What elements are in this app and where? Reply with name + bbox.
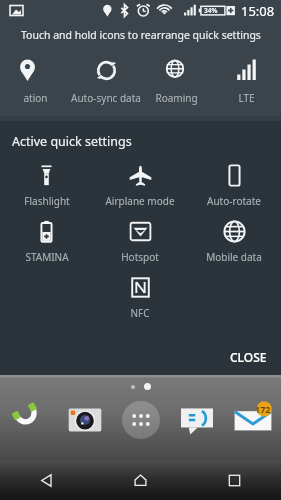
button[interactable]: Flashlight (0, 164, 93, 208)
button[interactable]: CLOSE (216, 341, 281, 373)
button[interactable]: Camera (57, 396, 113, 444)
button[interactable]: Messaging (169, 396, 225, 444)
staticText: Airplane mode (105, 194, 175, 208)
staticText: STAMINA (25, 250, 69, 264)
button[interactable]: Back (0, 460, 93, 500)
staticText: Hotspot (121, 250, 159, 264)
staticText: Roaming (155, 91, 198, 105)
staticText: CLOSE (230, 349, 267, 365)
staticText: Touch and hold icons to rearrange quick … (21, 28, 261, 42)
staticText: NFC (130, 306, 150, 320)
button[interactable]: Apps (113, 396, 169, 444)
staticText: ation (23, 91, 48, 105)
button[interactable]: STAMINA (0, 220, 93, 264)
button[interactable]: Hotspot (93, 220, 187, 264)
button[interactable]: Airplane mode (93, 164, 187, 208)
button[interactable]: Roaming (141, 48, 211, 116)
staticText: Mobile data (206, 250, 262, 264)
button[interactable]: NFC (93, 276, 187, 320)
staticText: 34% (204, 6, 218, 15)
button[interactable]: Auto-sync data (71, 48, 141, 116)
staticText: Flashlight (24, 194, 70, 208)
button[interactable]: Recent apps (187, 460, 281, 500)
button[interactable]: Mobile data (187, 220, 281, 264)
staticText: Active quick settings (12, 133, 132, 150)
button[interactable]: Auto-rotate (187, 164, 281, 208)
staticText: Auto-rotate (207, 194, 261, 208)
staticText: LTE (238, 91, 255, 105)
staticText: 172 (255, 403, 271, 415)
button[interactable]: Email (225, 396, 281, 444)
staticText: 15:08 (241, 2, 275, 20)
button[interactable]: LTE (211, 48, 281, 116)
staticText: Auto-sync data (71, 91, 141, 105)
button[interactable]: Phone (0, 396, 57, 444)
button[interactable]: Home (93, 460, 187, 500)
button[interactable]: ation (0, 48, 71, 116)
